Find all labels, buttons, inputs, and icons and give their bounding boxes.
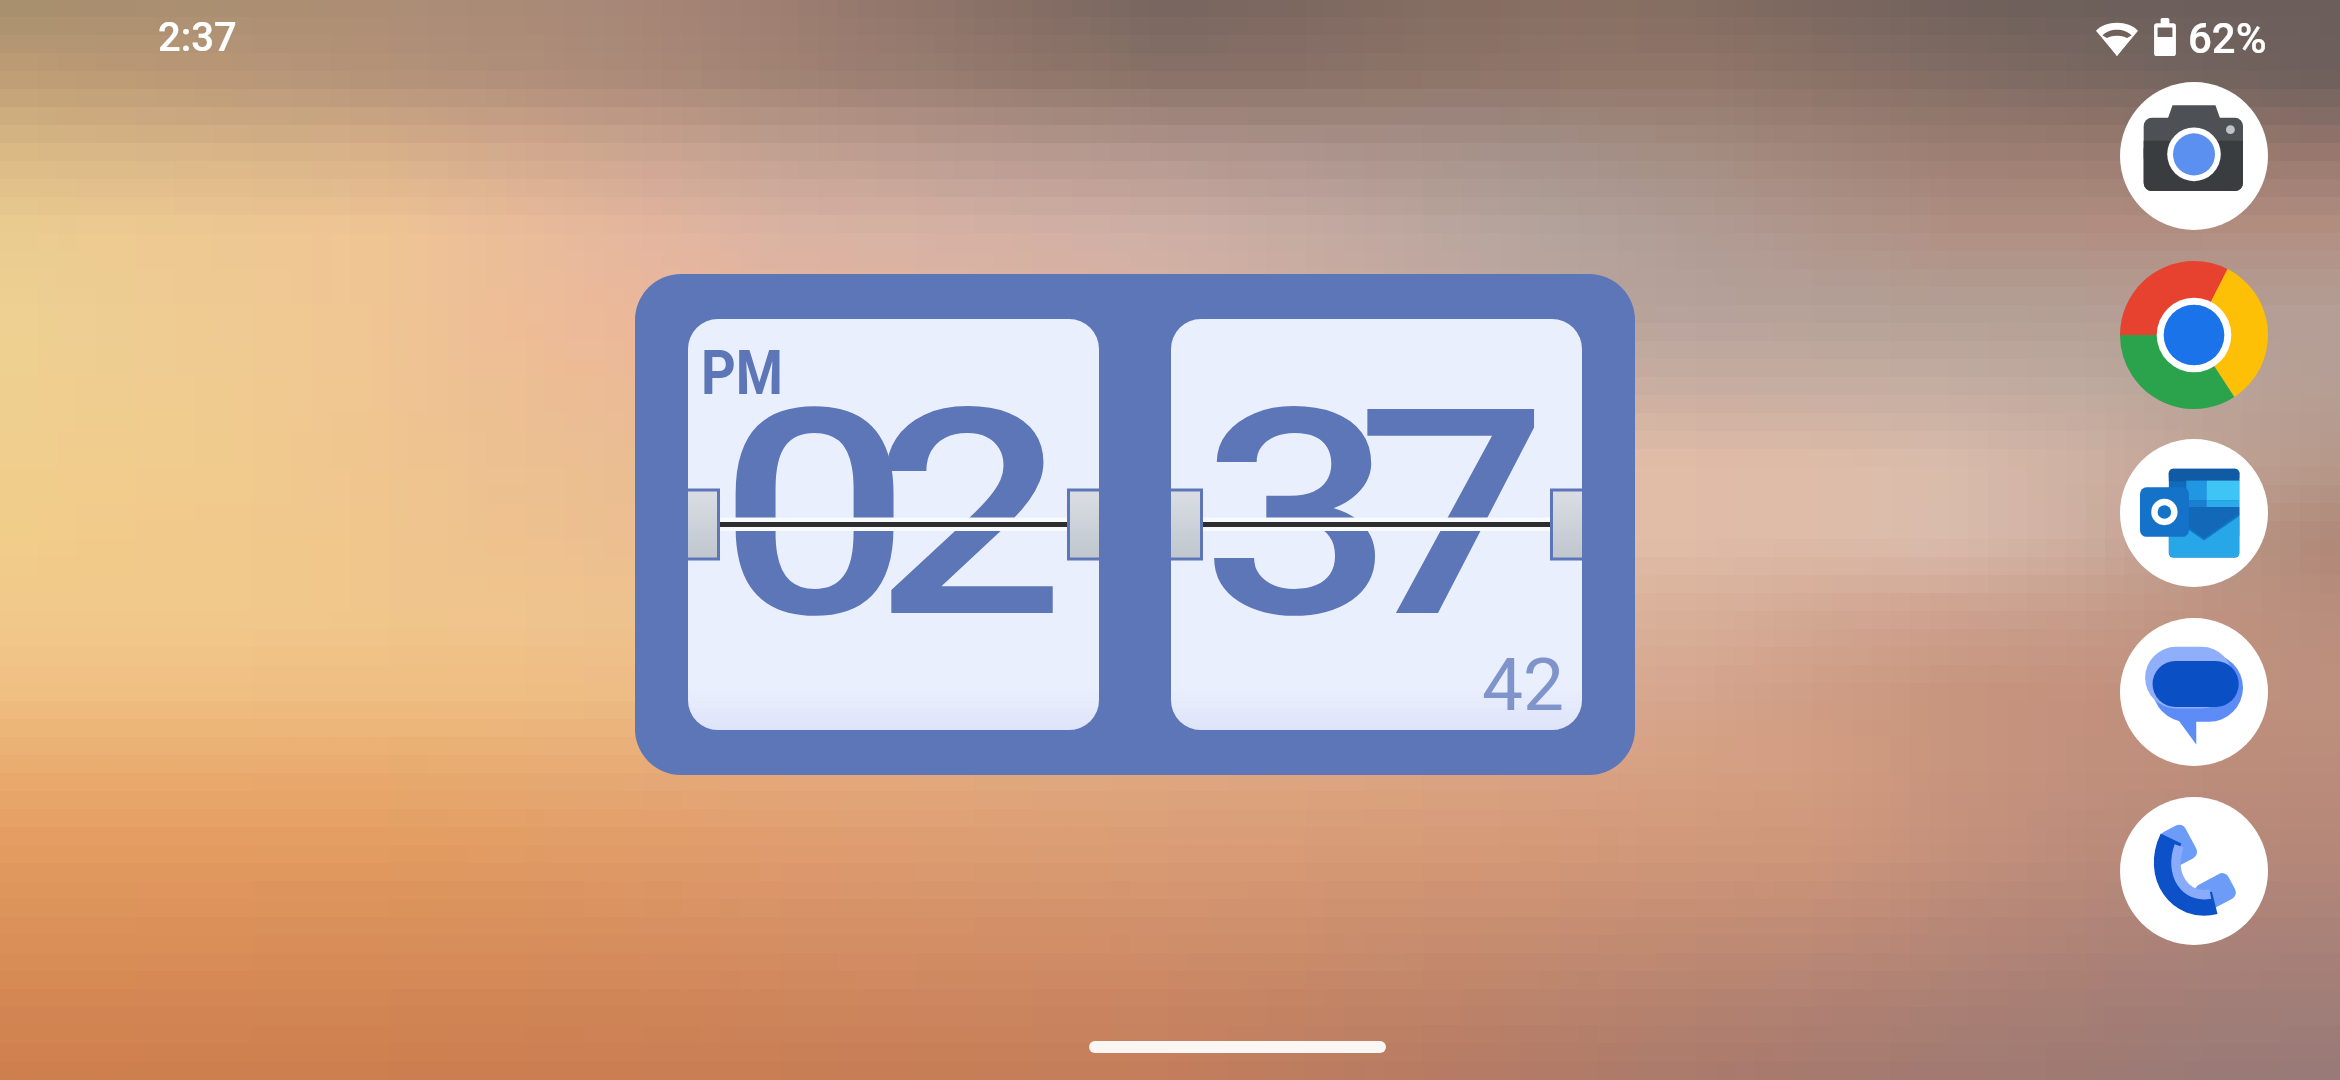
button[interactable]: 02 [688, 319, 1099, 730]
staticText: 02 [718, 347, 1029, 683]
button[interactable]: Messages [2120, 618, 2268, 766]
staticText: 37 [1201, 347, 1512, 683]
button[interactable]: Outlook [2120, 439, 2268, 587]
staticText: 62% [2188, 14, 2267, 63]
button[interactable]: 37 [1171, 319, 1582, 730]
button[interactable]: 02 [635, 274, 1635, 775]
staticText: 42 [1482, 642, 1565, 728]
button[interactable]: Chrome [2120, 261, 2268, 409]
staticText: PM [701, 336, 784, 409]
button[interactable] [1089, 1041, 1386, 1053]
button[interactable]: Phone [2120, 797, 2268, 945]
staticText: 2:37 [158, 14, 237, 61]
button[interactable]: Camera [2120, 82, 2268, 230]
